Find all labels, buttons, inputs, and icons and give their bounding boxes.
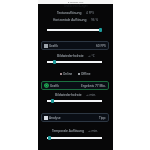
button[interactable]: Bildwiederholrate [55,93,97,97]
button[interactable]: Texturauflösung [57,11,94,15]
staticText: Tipp [99,116,106,120]
staticText: Temporale Auflösung [52,129,84,133]
staticText: 60 FPS [96,44,106,48]
staticText: Horizontale Auflösung [53,18,87,22]
staticText: → min. [86,93,97,97]
button[interactable]: Temporale Auflösung [52,129,99,133]
staticText: Grafik [49,44,58,48]
button[interactable]: Horizontale Auflösung [53,18,99,22]
button[interactable]: Slider [47,135,102,141]
staticText: Texturauflösung [57,11,82,15]
button[interactable]: Analyse [41,113,109,122]
staticText: Bildwiederholrate [57,54,84,58]
staticText: Analyse [49,116,61,120]
button[interactable]: Grafik [41,41,109,50]
staticText: → °C [88,54,95,58]
button[interactable]: Slider [47,59,102,65]
staticText: Grafik [50,84,59,88]
button[interactable]: Online [60,72,73,76]
button[interactable]: Slider [47,98,102,104]
staticText: Offline [81,72,91,76]
staticText: 4 FPS [86,11,94,15]
button[interactable]: Offline [78,72,91,76]
staticText: 96 % [91,18,99,22]
button[interactable]: Bildwiederholrate [57,54,95,58]
button[interactable]: Grafik [41,81,109,90]
staticText: Bildwiederholrate [55,93,82,97]
staticText: ▴ netzwelt.com [68,1,84,4]
staticText: Online [63,72,73,76]
staticText: → min. [88,129,99,133]
staticText: Grafikeinstellungen [64,4,88,8]
button[interactable]: Slider [47,27,102,33]
staticText: Ergebnis 77 Mio. [81,84,106,88]
